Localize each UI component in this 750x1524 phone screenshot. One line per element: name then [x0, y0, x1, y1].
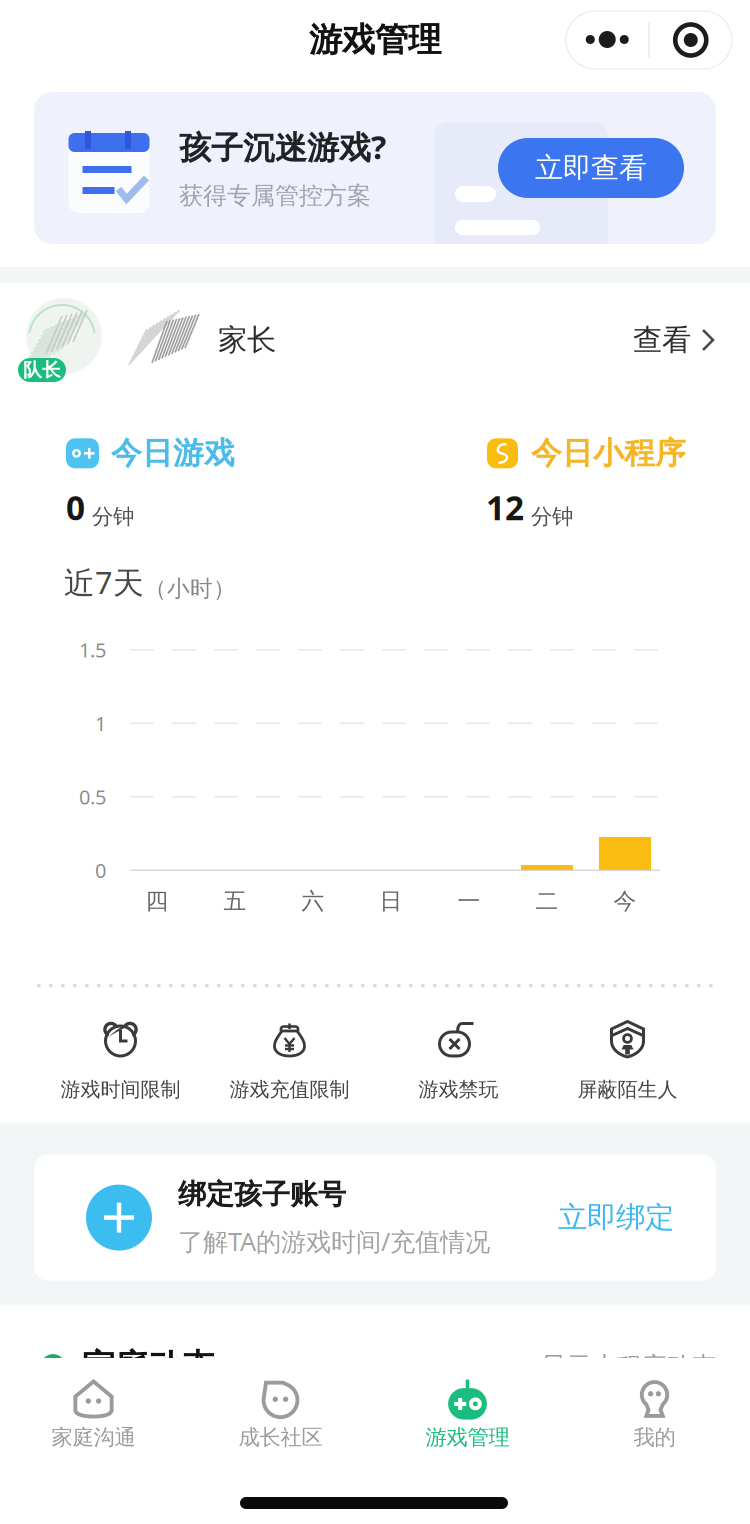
staticText: 一: [457, 887, 480, 916]
button[interactable]: 队长: [0, 289, 750, 391]
button[interactable]: 孩子沉迷游戏?: [0, 92, 750, 244]
staticText: 显示小程序动态: [541, 1351, 716, 1382]
button[interactable]: 家庭沟通: [0, 1358, 187, 1466]
staticText: 队长: [23, 358, 61, 382]
staticText: 立即绑定: [558, 1199, 674, 1236]
staticText: 六: [301, 887, 324, 916]
staticText: 查看: [633, 321, 691, 358]
staticText: 家庭动态: [82, 1346, 214, 1388]
staticText: 家长: [218, 321, 276, 358]
staticText: 我的: [633, 1424, 675, 1451]
staticText: 游戏禁玩: [418, 1077, 498, 1102]
staticText: 二: [535, 887, 558, 916]
staticText: 今日小程序: [531, 434, 686, 473]
staticText: 今日游戏: [111, 434, 235, 473]
staticText: 12: [486, 485, 524, 530]
staticText: 0: [66, 485, 85, 530]
staticText: 立即查看: [535, 150, 647, 186]
button[interactable]: 游戏时间限制: [36, 1010, 205, 1110]
button[interactable]: 游戏充值限制: [205, 1010, 374, 1110]
staticText: 绑定孩子账号: [178, 1177, 346, 1212]
button[interactable]: 更多: [566, 11, 732, 69]
staticText: 1.5: [79, 636, 106, 663]
staticText: 0.5: [79, 783, 106, 810]
staticText: 近7天: [64, 561, 144, 603]
staticText: 四: [145, 887, 168, 916]
staticText: 分钟: [92, 503, 134, 530]
staticText: 游戏管理: [425, 1424, 509, 1451]
button[interactable]: 我的: [561, 1358, 748, 1466]
staticText: 孩子沉迷游戏?: [179, 125, 386, 169]
staticText: 成长社区: [238, 1424, 322, 1451]
staticText: 家庭沟通: [51, 1424, 135, 1451]
staticText: 游戏时间限制: [60, 1077, 180, 1102]
staticText: 日: [379, 887, 402, 916]
staticText: （小时）: [144, 574, 236, 603]
staticText: 1: [95, 710, 106, 737]
button[interactable]: 游戏管理: [374, 1358, 561, 1466]
button[interactable]: 成长社区: [187, 1358, 374, 1466]
staticText: 分钟: [531, 503, 573, 530]
staticText: 五: [223, 887, 246, 916]
staticText: 了解TA的游戏时间/充值情况: [178, 1224, 490, 1258]
button[interactable]: 游戏禁玩: [374, 1010, 543, 1110]
button[interactable]: 屏蔽陌生人: [543, 1010, 712, 1110]
staticText: 屏蔽陌生人: [577, 1077, 677, 1102]
staticText: 游戏管理: [309, 19, 441, 61]
staticText: 获得专属管控方案: [179, 181, 371, 211]
button[interactable]: 绑定孩子账号: [0, 1155, 750, 1281]
staticText: 0: [95, 857, 106, 884]
staticText: 游戏充值限制: [229, 1077, 349, 1102]
staticText: 今: [613, 887, 636, 916]
